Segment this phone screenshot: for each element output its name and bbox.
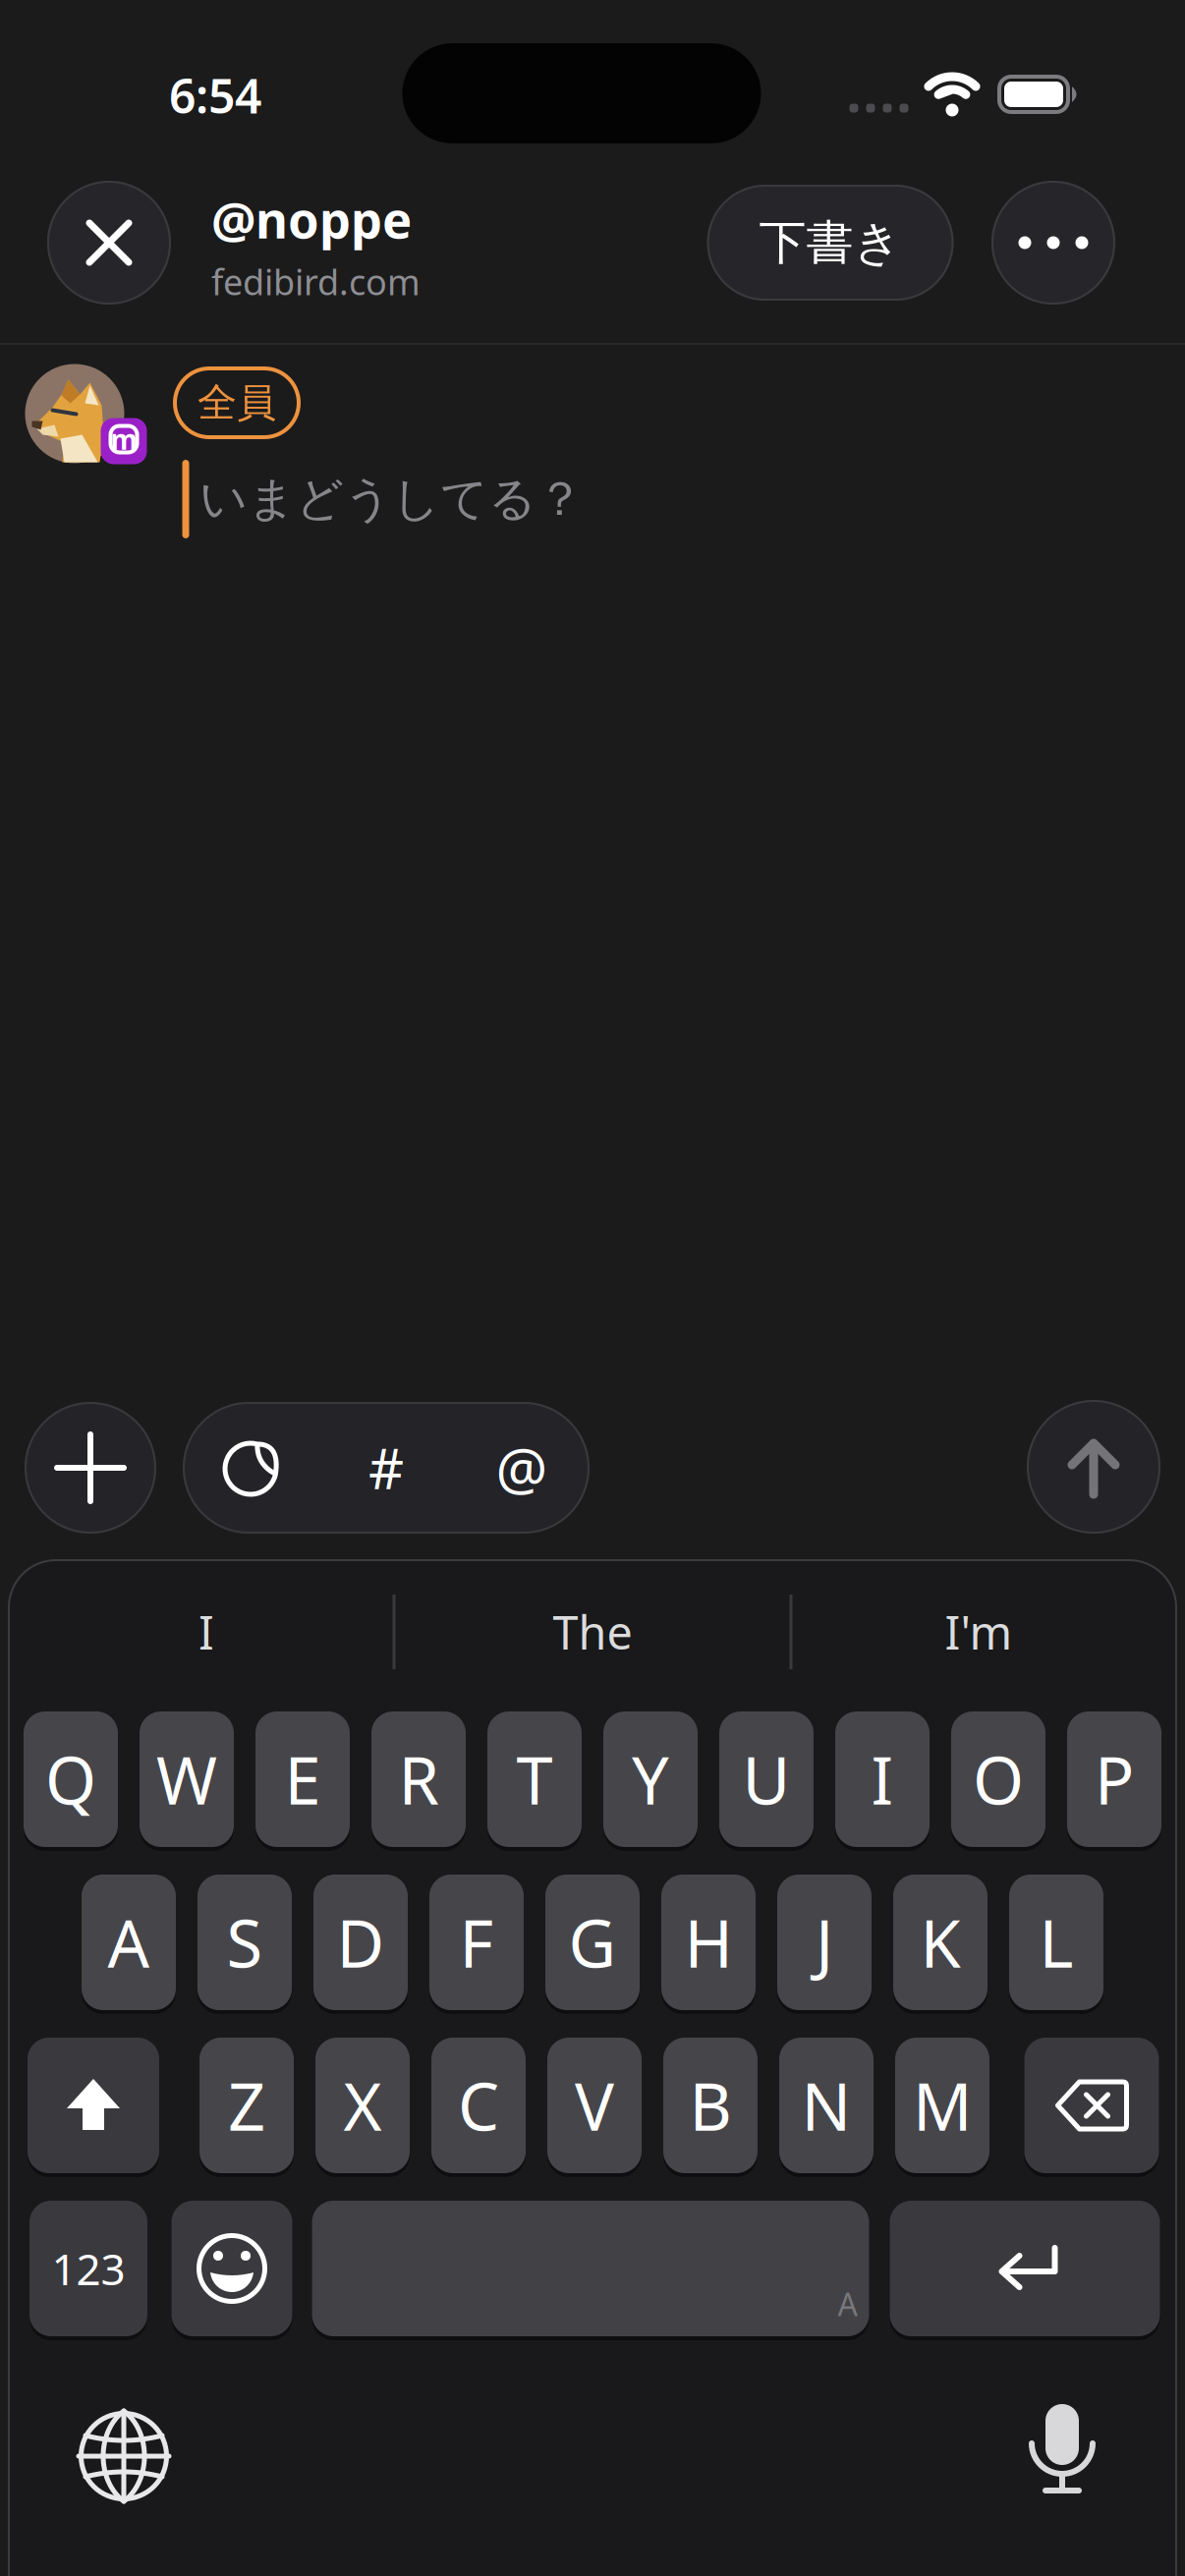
button[interactable]: I'm xyxy=(792,1583,1165,1681)
staticText: W xyxy=(156,1736,217,1823)
staticText: # xyxy=(368,1431,404,1504)
button[interactable]: B xyxy=(663,2038,758,2173)
staticText: L xyxy=(1039,1899,1073,1986)
staticText: I xyxy=(198,1601,214,1662)
staticText: S xyxy=(226,1899,263,1986)
button[interactable]: I xyxy=(835,1711,930,1847)
button[interactable]: Shift xyxy=(28,2038,159,2173)
button[interactable]: D xyxy=(313,1875,408,2010)
button[interactable]: F xyxy=(429,1875,524,2010)
staticText: J xyxy=(816,1899,833,1986)
staticText: B xyxy=(689,2062,732,2149)
button[interactable]: More options xyxy=(991,181,1115,305)
button[interactable]: I xyxy=(20,1583,393,1681)
button[interactable]: Dictation xyxy=(998,2392,1126,2520)
button[interactable]: Mention xyxy=(454,1402,590,1534)
button[interactable]: Delete xyxy=(1024,2038,1159,2173)
staticText: T xyxy=(516,1736,553,1823)
staticText: H xyxy=(684,1899,733,1986)
button[interactable]: Q xyxy=(24,1711,118,1847)
button[interactable]: X xyxy=(315,2038,410,2173)
staticText: O xyxy=(973,1736,1024,1823)
button[interactable]: Post xyxy=(1027,1400,1160,1534)
button[interactable]: V xyxy=(547,2038,642,2173)
staticText: X xyxy=(343,2062,382,2149)
staticText: M xyxy=(913,2062,972,2149)
staticText: V xyxy=(575,2062,614,2149)
button[interactable]: C xyxy=(431,2038,526,2173)
staticText: 123 xyxy=(52,2240,125,2297)
button[interactable]: 全員 xyxy=(173,366,301,439)
button[interactable]: Emoji xyxy=(171,2201,292,2336)
button[interactable]: Custom emoji xyxy=(183,1402,318,1534)
staticText: P xyxy=(1095,1736,1134,1823)
button[interactable]: H xyxy=(661,1875,756,2010)
staticText: I'm xyxy=(945,1601,1013,1662)
button[interactable]: Space xyxy=(312,2201,869,2336)
button[interactable]: E xyxy=(255,1711,350,1847)
button[interactable]: Y xyxy=(603,1711,698,1847)
staticText: A xyxy=(838,2283,857,2325)
button[interactable]: G xyxy=(545,1875,640,2010)
button[interactable]: L xyxy=(1009,1875,1103,2010)
button[interactable]: N xyxy=(779,2038,874,2173)
staticText: いまどうしてる？ xyxy=(199,470,584,528)
staticText: Q xyxy=(45,1736,96,1823)
staticText: C xyxy=(458,2062,499,2149)
staticText: m xyxy=(111,421,137,457)
button[interactable]: A xyxy=(82,1875,176,2010)
button[interactable]: T xyxy=(487,1711,582,1847)
staticText: 下書き xyxy=(759,214,902,272)
button[interactable]: W xyxy=(140,1711,234,1847)
button[interactable]: U xyxy=(719,1711,814,1847)
staticText: Y xyxy=(632,1736,669,1823)
button[interactable]: The xyxy=(406,1583,779,1681)
staticText: F xyxy=(459,1899,494,1986)
staticText: E xyxy=(284,1736,321,1823)
staticText: I xyxy=(871,1736,894,1823)
staticText: @noppe xyxy=(211,186,412,252)
button[interactable]: M xyxy=(895,2038,989,2173)
staticText: D xyxy=(337,1899,385,1986)
button[interactable]: Hashtag xyxy=(318,1402,454,1534)
staticText: A xyxy=(108,1899,150,1986)
staticText: K xyxy=(920,1899,960,1986)
staticText: The xyxy=(553,1601,632,1662)
button[interactable]: S xyxy=(197,1875,292,2010)
button[interactable]: R xyxy=(371,1711,466,1847)
staticText: G xyxy=(568,1899,617,1986)
button[interactable]: Next keyboard xyxy=(60,2392,188,2520)
button[interactable]: 下書き xyxy=(707,185,954,301)
button[interactable]: K xyxy=(893,1875,987,2010)
button[interactable]: O xyxy=(951,1711,1045,1847)
staticText: fedibird.com xyxy=(211,258,421,305)
staticText: @ xyxy=(496,1429,548,1506)
button[interactable]: Z xyxy=(199,2038,294,2173)
button[interactable]: Close xyxy=(47,181,171,305)
button[interactable]: Numbers xyxy=(29,2201,147,2336)
button[interactable]: J xyxy=(777,1875,872,2010)
button[interactable]: P xyxy=(1067,1711,1161,1847)
staticText: N xyxy=(801,2062,851,2149)
button[interactable]: Return xyxy=(890,2201,1160,2336)
button[interactable]: Add attachment xyxy=(25,1402,156,1534)
staticText: Z xyxy=(228,2062,265,2149)
staticText: U xyxy=(742,1736,790,1823)
staticText: 6:54 xyxy=(169,64,261,127)
staticText: R xyxy=(398,1736,439,1823)
staticText: 全員 xyxy=(197,379,276,427)
